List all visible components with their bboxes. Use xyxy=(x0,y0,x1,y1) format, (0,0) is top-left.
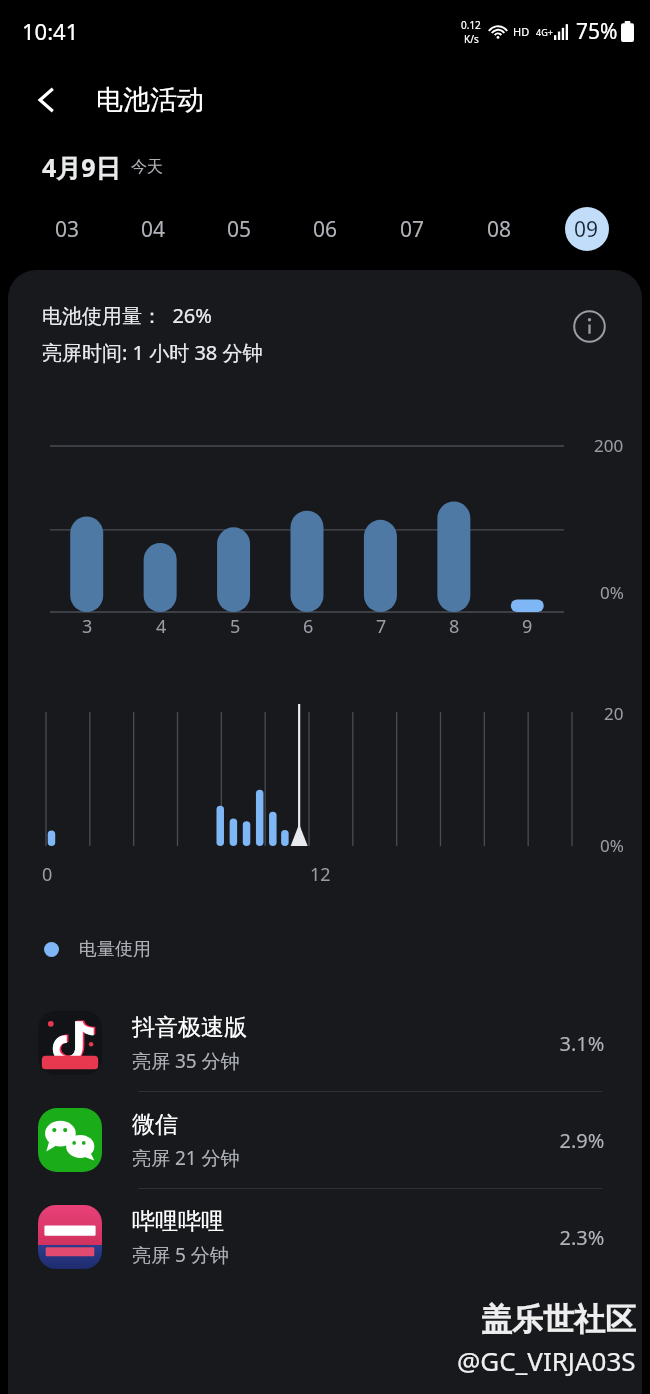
staticText: 08 xyxy=(487,215,512,244)
button[interactable]: Back xyxy=(28,80,68,120)
button[interactable]: 08 xyxy=(456,196,543,262)
staticText: 05 xyxy=(227,215,252,244)
staticText: 9 xyxy=(522,614,533,639)
staticText: HD xyxy=(513,24,530,39)
staticText: 亮屏 5 分钟 xyxy=(132,1242,229,1268)
staticText: 今天 xyxy=(131,157,163,177)
staticText: 6 xyxy=(303,614,314,639)
staticText: 8 xyxy=(449,614,460,639)
staticText: 2.3% xyxy=(522,1224,642,1251)
staticText: @GC_VIRJA03S xyxy=(457,1343,636,1378)
staticText: 微信 xyxy=(132,1110,178,1139)
staticText: 3.1% xyxy=(522,1030,642,1057)
button[interactable]: 04 xyxy=(110,196,196,262)
button[interactable]: 05 xyxy=(196,196,282,262)
staticText: 7 xyxy=(376,614,387,639)
staticText: 07 xyxy=(400,215,425,244)
staticText: 0 xyxy=(42,862,53,887)
staticText: 4月9日 xyxy=(42,150,121,184)
staticText: 亮屏时间: 1 小时 38 分钟 xyxy=(42,339,263,366)
button[interactable]: 抖音极速版 xyxy=(8,995,642,1091)
button[interactable]: 09 xyxy=(543,196,630,262)
staticText: 亮屏 35 分钟 xyxy=(132,1048,240,1074)
staticText: 20 xyxy=(604,702,624,725)
staticText: 09 xyxy=(574,215,599,244)
staticText: 亮屏 21 分钟 xyxy=(132,1145,240,1171)
staticText: 电池活动 xyxy=(96,83,204,117)
button[interactable]: 03 xyxy=(24,196,110,262)
staticText: 0% xyxy=(600,834,624,857)
staticText: 抖音极速版 xyxy=(132,1013,247,1042)
staticText: 哔哩哔哩 xyxy=(132,1207,224,1236)
staticText: 0% xyxy=(600,581,624,604)
staticText: 04 xyxy=(141,215,166,244)
staticText: 5 xyxy=(230,614,241,639)
button[interactable]: 07 xyxy=(369,196,456,262)
button[interactable]: 哔哩哔哩 xyxy=(8,1189,642,1285)
staticText: 电池使用量： 26% xyxy=(42,302,212,329)
staticText: 12 xyxy=(310,862,331,887)
button[interactable]: Information xyxy=(569,306,609,346)
staticText: K/s xyxy=(464,32,479,46)
staticText: 10:41 xyxy=(22,16,79,46)
button[interactable]: 微信 xyxy=(8,1092,642,1188)
staticText: 75% xyxy=(576,17,618,46)
staticText: 3 xyxy=(82,614,93,639)
staticText: 03 xyxy=(55,215,80,244)
staticText: 06 xyxy=(313,215,338,244)
staticText: 4 xyxy=(156,614,167,639)
staticText: 200 xyxy=(594,434,624,457)
staticText: 4G+ xyxy=(536,26,553,38)
staticText: 2.9% xyxy=(522,1127,642,1154)
staticText: 盖乐世社区 xyxy=(481,1300,636,1339)
staticText: 电量使用 xyxy=(79,938,151,961)
button[interactable]: 06 xyxy=(282,196,369,262)
staticText: 0.12 xyxy=(461,18,481,32)
